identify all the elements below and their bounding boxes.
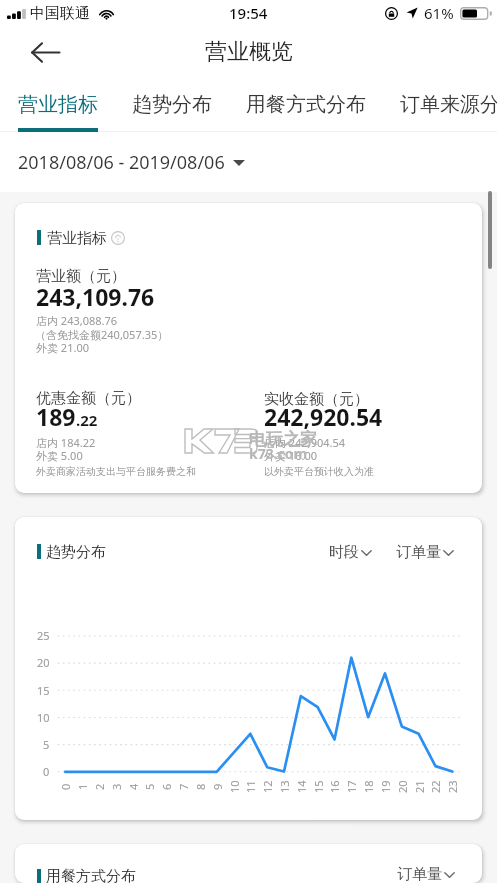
button[interactable]: 趋势分布 — [132, 77, 212, 132]
staticText: 0 — [58, 783, 73, 790]
staticText: 61% — [424, 3, 454, 23]
staticText: 实收金额（元） — [264, 390, 369, 409]
button[interactable]: 返回 — [31, 35, 65, 69]
staticText: 营业概览 — [205, 38, 293, 66]
staticText: 17 — [344, 780, 359, 793]
staticText: 外卖商家活动支出与平台服务费之和 — [36, 465, 196, 478]
staticText: 14 — [294, 780, 309, 793]
staticText: 242,920.54 — [264, 401, 383, 432]
staticText: 订单量 — [397, 865, 442, 883]
staticText: 外卖 21.00 — [36, 340, 89, 355]
staticText: 15 — [311, 780, 326, 793]
button[interactable]: 2018/08/06 - 2019/08/06 — [18, 150, 245, 175]
staticText: 7 — [176, 783, 191, 790]
staticText: 243,109.76 — [36, 281, 155, 312]
staticText: 优惠金额（元） — [36, 389, 141, 408]
staticText: 25 — [37, 628, 50, 643]
staticText: k73.com — [249, 444, 308, 463]
button[interactable]: 营业指标 — [18, 77, 98, 132]
staticText: 趋势分布 — [132, 92, 212, 117]
staticText: 189 — [36, 401, 76, 432]
staticText: 店内 184.22 — [36, 435, 96, 450]
staticText: 19 — [378, 780, 393, 793]
staticText: 用餐方式分布 — [46, 867, 136, 883]
button[interactable]: 时段 — [329, 543, 372, 562]
staticText: 5 — [142, 783, 157, 790]
staticText: 1 — [75, 783, 90, 790]
staticText: 4 — [126, 783, 141, 790]
staticText: 10 — [37, 710, 50, 725]
staticText: .22 — [76, 410, 98, 430]
staticText: 6 — [159, 783, 174, 790]
staticText: 18 — [361, 780, 376, 793]
staticText: 21 — [412, 780, 427, 793]
staticText: 店内 243,088.76 — [36, 313, 118, 328]
staticText: 5 — [43, 737, 50, 752]
staticText: 20 — [37, 655, 50, 670]
button[interactable]: 订单量 — [396, 543, 454, 562]
staticText: 用餐方式分布 — [246, 92, 366, 117]
staticText: 中国联通 — [30, 4, 90, 23]
staticText: 营业额（元） — [36, 267, 126, 286]
staticText: 13 — [277, 780, 292, 793]
staticText: 12 — [260, 780, 275, 793]
staticText: 外卖 5.00 — [36, 448, 83, 463]
staticText: 23 — [445, 780, 460, 793]
staticText: 电玩之家 — [249, 429, 317, 450]
staticText: 以外卖平台预计收入为准 — [264, 465, 374, 478]
staticText: 10 — [227, 780, 242, 793]
staticText: 16 — [327, 780, 342, 793]
staticText: 0 — [43, 764, 50, 779]
button[interactable]: 订单量 — [397, 865, 455, 883]
staticText: 营业指标 — [47, 229, 107, 248]
staticText: 2 — [92, 783, 107, 790]
staticText: 外卖 16.00 — [264, 448, 317, 463]
staticText: 店内 242,904.54 — [264, 435, 346, 450]
staticText: 22 — [428, 780, 443, 793]
staticText: 营业指标 — [18, 92, 98, 117]
staticText: 20 — [395, 780, 410, 793]
staticText: 11 — [243, 780, 258, 793]
staticText: 订单量 — [396, 543, 441, 562]
button[interactable]: 用餐方式分布 — [246, 77, 366, 132]
button[interactable]: 订单来源分析 — [400, 77, 497, 132]
staticText: 15 — [37, 683, 50, 698]
staticText: 时段 — [329, 543, 359, 562]
staticText: （含免找金额240,057.35） — [35, 327, 169, 342]
staticText: 9 — [210, 783, 225, 790]
staticText: 3 — [109, 783, 124, 790]
staticText: 8 — [193, 783, 208, 790]
staticText: 趋势分布 — [46, 543, 106, 562]
staticText: 19:54 — [229, 3, 268, 23]
staticText: 2018/08/06 - 2019/08/06 — [18, 150, 225, 175]
staticText: 订单来源分析 — [400, 92, 497, 117]
